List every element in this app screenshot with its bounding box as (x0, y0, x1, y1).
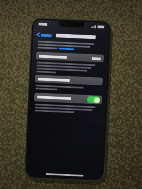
button[interactable]: Back to Battery (37, 32, 52, 37)
button[interactable] (35, 74, 103, 86)
button[interactable]: Learn more (58, 47, 74, 50)
button[interactable]: Optimised battery charging toggle (34, 92, 102, 105)
button[interactable] (36, 51, 104, 63)
button[interactable]: Optimised battery charging toggle (87, 96, 100, 103)
